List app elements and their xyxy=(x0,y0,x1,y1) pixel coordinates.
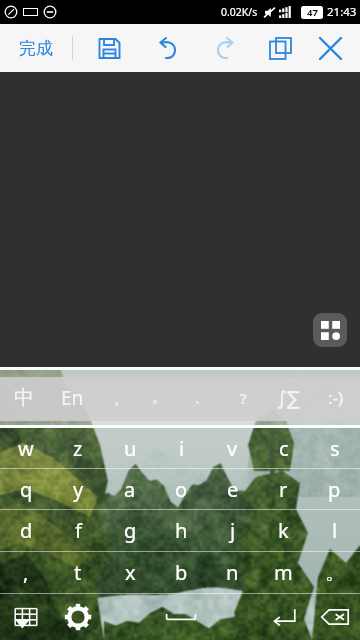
button[interactable]: Backspace xyxy=(309,594,360,640)
button[interactable]: More tools xyxy=(313,313,347,347)
button[interactable]: q xyxy=(0,469,52,509)
staticText: k xyxy=(278,517,289,544)
button[interactable]: Enter xyxy=(258,594,309,640)
button[interactable]: r xyxy=(258,469,309,509)
staticText: En xyxy=(61,385,84,411)
button[interactable]: j xyxy=(207,510,258,551)
staticText: 、 xyxy=(194,388,209,407)
button[interactable]: Space xyxy=(104,594,258,640)
staticText: 47 xyxy=(307,6,318,19)
button[interactable]: u xyxy=(104,428,156,468)
button[interactable]: f xyxy=(52,510,104,551)
button[interactable]: d xyxy=(0,510,52,551)
staticText: a xyxy=(124,476,136,503)
button[interactable]: z xyxy=(52,428,104,468)
button[interactable]: En xyxy=(48,370,96,425)
button[interactable]: Symbols xyxy=(0,594,52,640)
staticText: 21:43 xyxy=(327,4,357,20)
button[interactable]: y xyxy=(52,469,104,509)
button[interactable]: p xyxy=(309,469,360,509)
button[interactable]: 。 xyxy=(309,552,360,593)
button[interactable]: n xyxy=(207,552,258,593)
button[interactable]: ∫∑ xyxy=(264,370,312,425)
staticText: v xyxy=(227,435,238,462)
button[interactable]: 、 xyxy=(180,370,222,425)
button[interactable]: 中 xyxy=(0,370,48,425)
staticText: :-) xyxy=(328,386,344,409)
button[interactable]: c xyxy=(258,428,309,468)
button[interactable]: v xyxy=(207,428,258,468)
button[interactable]: w xyxy=(0,428,52,468)
staticText: o xyxy=(175,476,188,503)
staticText: w xyxy=(18,435,34,462)
button[interactable]: :-) xyxy=(312,370,360,425)
button[interactable]: 。 xyxy=(138,370,180,425)
button[interactable]: Save xyxy=(85,24,133,72)
button[interactable]: x xyxy=(104,552,156,593)
button[interactable]: k xyxy=(258,510,309,551)
staticText: m xyxy=(274,559,293,586)
button[interactable]: Undo xyxy=(143,24,191,72)
staticText: p xyxy=(328,476,341,503)
button[interactable]: g xyxy=(104,510,156,551)
button[interactable]: e xyxy=(207,469,258,509)
button[interactable]: i xyxy=(156,428,207,468)
button[interactable]: 完成 xyxy=(0,24,72,72)
staticText: 完成 xyxy=(19,38,53,59)
staticText: , xyxy=(23,559,29,586)
button[interactable]: Close xyxy=(306,24,354,72)
staticText: 。 xyxy=(152,388,167,407)
button[interactable]: o xyxy=(156,469,207,509)
staticText: n xyxy=(226,559,239,586)
staticText: q xyxy=(20,476,33,503)
staticText: t xyxy=(74,559,82,586)
staticText: g xyxy=(124,517,137,544)
button[interactable]: t xyxy=(52,552,104,593)
staticText: l xyxy=(332,517,338,544)
staticText: b xyxy=(175,559,188,586)
staticText: h xyxy=(175,517,188,544)
staticText: d xyxy=(20,517,33,544)
button[interactable]: Settings xyxy=(52,594,104,640)
staticText: f xyxy=(75,517,82,544)
button[interactable]: a xyxy=(104,469,156,509)
staticText: e xyxy=(227,476,239,503)
staticText: i xyxy=(179,435,185,462)
staticText: s xyxy=(330,435,340,462)
button[interactable]: h xyxy=(156,510,207,551)
button[interactable]: Layers xyxy=(256,24,304,72)
staticText: z xyxy=(73,435,83,462)
staticText: j xyxy=(230,517,236,544)
button[interactable]: s xyxy=(309,428,360,468)
button[interactable]: l xyxy=(309,510,360,551)
staticText: ? xyxy=(240,388,247,408)
staticText: r xyxy=(279,476,288,503)
staticText: 。 xyxy=(325,560,345,585)
button[interactable]: Redo xyxy=(201,24,249,72)
button[interactable]: m xyxy=(258,552,309,593)
button[interactable]: b xyxy=(156,552,207,593)
staticText: u xyxy=(124,435,137,462)
staticText: x xyxy=(125,559,136,586)
button[interactable]: ? xyxy=(222,370,264,425)
staticText: , xyxy=(115,388,120,408)
staticText: 中 xyxy=(14,385,34,410)
button[interactable]: , xyxy=(0,552,52,593)
button[interactable]: , xyxy=(96,370,138,425)
staticText: y xyxy=(73,476,84,503)
staticText: ∫∑ xyxy=(277,387,300,409)
staticText: 0.02K/s xyxy=(221,5,258,19)
staticText: c xyxy=(279,435,289,462)
